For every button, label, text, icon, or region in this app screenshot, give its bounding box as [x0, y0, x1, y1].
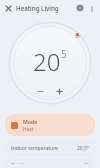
button[interactable]: Outdoor temperature	[5, 158, 95, 168]
staticText: 20.5°	[76, 145, 89, 152]
button[interactable]: Temperature dial	[8, 21, 92, 105]
staticText: 5	[61, 47, 67, 61]
button[interactable]: Increase temperature	[53, 85, 66, 98]
staticText: Mode	[23, 118, 38, 125]
staticText: Heating Living Room…	[16, 4, 74, 12]
staticText: Indoor temperature	[11, 145, 76, 152]
staticText: 20	[33, 45, 61, 78]
button[interactable]: More options	[86, 3, 97, 14]
staticText: Heat	[23, 126, 34, 132]
staticText: 20°	[75, 34, 81, 39]
staticText: 3°	[83, 162, 89, 164]
button[interactable]: Close	[3, 3, 14, 14]
button[interactable]: Decrease temperature	[34, 85, 47, 98]
staticText: Outdoor temperature	[11, 162, 83, 164]
button[interactable]: Settings	[74, 2, 86, 14]
button[interactable]: Indoor temperature	[5, 141, 95, 156]
button[interactable]: Mode	[5, 114, 95, 136]
